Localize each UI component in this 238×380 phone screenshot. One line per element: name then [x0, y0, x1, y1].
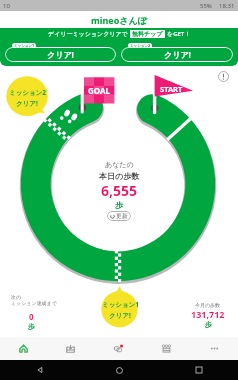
staticText: 10 [3, 2, 10, 10]
staticText: GOAL [88, 85, 110, 96]
staticText: ミッション1 [102, 300, 139, 309]
button[interactable]: Home [0, 337, 47, 360]
staticText: をGET！ [167, 30, 191, 38]
staticText: 本日の歩数 [99, 171, 140, 181]
staticText: 131,712 [191, 308, 225, 320]
staticText: 今月の歩数 [195, 302, 221, 308]
button[interactable]: Messages [94, 337, 142, 360]
button[interactable]: クリア! [5, 43, 116, 63]
button[interactable]: More [190, 337, 238, 360]
staticText: ミッション達成まで [11, 300, 57, 306]
staticText: ミッション2 [9, 88, 46, 97]
staticText: 更新 [116, 212, 128, 220]
button[interactable]: クリア! [121, 43, 233, 63]
button[interactable]: Shop [142, 337, 190, 360]
staticText: クリア! [16, 99, 38, 108]
button[interactable]: Inbox [47, 337, 94, 360]
staticText: クリア! [164, 49, 191, 60]
staticText: 歩 [28, 322, 35, 331]
staticText: クリア! [109, 311, 131, 320]
staticText: あなたの [105, 160, 134, 169]
staticText: 無料チップ [132, 30, 163, 38]
staticText: mineoさんぽ [91, 14, 147, 26]
staticText: ミッション2 [130, 43, 150, 48]
staticText: 6,555 [101, 181, 138, 200]
button[interactable]: Back [0, 360, 80, 380]
staticText: 18:31 [219, 2, 235, 10]
staticText: ミッション1 [14, 43, 34, 48]
staticText: 次の [11, 294, 22, 300]
staticText: クリア! [47, 49, 74, 60]
button[interactable]: Home [80, 360, 159, 380]
staticText: デイリーミッションクリアで [48, 30, 128, 38]
staticText: 歩 [205, 320, 212, 329]
staticText: START [160, 84, 183, 94]
staticText: 歩 [115, 200, 123, 210]
button[interactable]: Information [216, 69, 230, 83]
staticText: 55% [200, 2, 212, 10]
staticText: 0 [29, 311, 34, 322]
button[interactable]: Recents [159, 360, 238, 380]
button[interactable]: 更新 [107, 211, 131, 221]
